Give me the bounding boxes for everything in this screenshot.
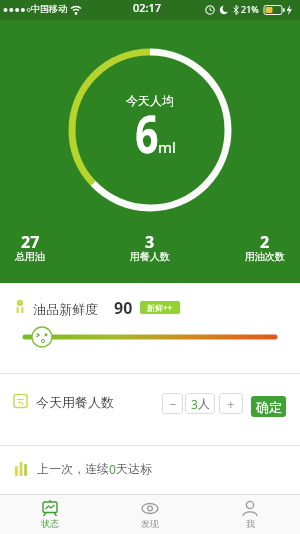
- button[interactable]: +: [219, 393, 243, 414]
- button[interactable]: 状态: [0, 494, 100, 534]
- staticText: +: [227, 395, 235, 413]
- staticText: 2: [260, 231, 270, 253]
- staticText: 天达标: [116, 461, 152, 476]
- staticText: 我: [246, 518, 255, 529]
- button[interactable]: 我: [200, 494, 300, 534]
- staticText: 27: [21, 231, 40, 253]
- staticText: 今天人均: [126, 93, 174, 108]
- button[interactable]: 发现: [100, 494, 200, 534]
- staticText: 今天用餐人数: [36, 394, 114, 410]
- button[interactable]: 27: [15, 231, 45, 266]
- staticText: 总用油: [15, 250, 45, 263]
- staticText: 3: [145, 231, 155, 253]
- staticText: 21%: [241, 3, 259, 15]
- staticText: 用油次数: [245, 250, 285, 263]
- button[interactable]: −: [162, 393, 183, 414]
- button[interactable]: 确定: [251, 396, 286, 417]
- staticText: 人: [198, 396, 210, 411]
- staticText: 确定: [256, 399, 282, 415]
- staticText: 油品新鲜度: [33, 301, 98, 317]
- button[interactable]: [0, 325, 300, 355]
- staticText: 0: [109, 461, 116, 477]
- staticText: 发现: [141, 518, 159, 529]
- button[interactable]: 新鲜++: [140, 301, 180, 314]
- staticText: −: [169, 395, 177, 413]
- staticText: 状态: [41, 518, 59, 529]
- staticText: 用餐人数: [130, 250, 170, 263]
- button[interactable]: 上一次，连续: [37, 461, 152, 477]
- staticText: 90: [114, 297, 133, 319]
- staticText: 02:17: [133, 0, 162, 15]
- staticText: 新鲜++: [147, 302, 173, 313]
- button[interactable]: 2: [245, 231, 285, 266]
- button[interactable]: 3: [185, 393, 215, 414]
- staticText: 3: [191, 396, 198, 412]
- staticText: ml: [158, 137, 176, 157]
- staticText: 中国移动: [31, 3, 67, 14]
- staticText: 上一次，连续: [37, 461, 109, 476]
- staticText: 6: [135, 97, 159, 168]
